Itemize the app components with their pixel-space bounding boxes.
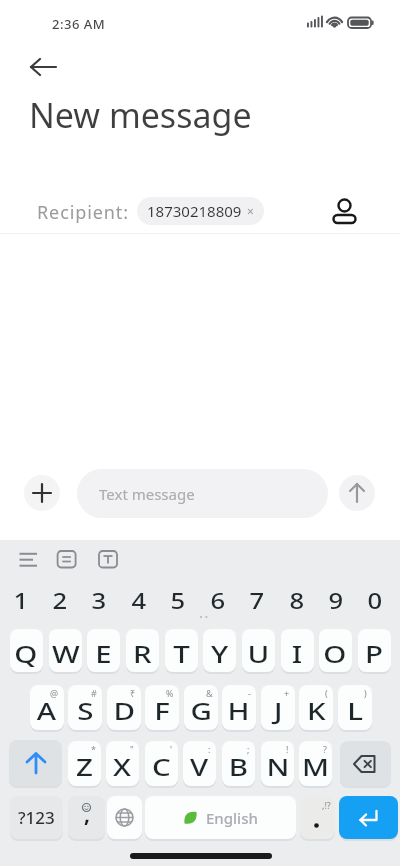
button[interactable]: English [145, 796, 296, 839]
staticText: D [114, 695, 135, 726]
button[interactable]: E [87, 629, 120, 672]
staticText: × [247, 203, 254, 219]
button[interactable]: K [299, 685, 333, 730]
button[interactable]: H [222, 685, 256, 730]
staticText: I [292, 638, 303, 669]
button[interactable]: , [68, 796, 105, 839]
button[interactable]: S [68, 685, 102, 730]
staticText: " [130, 743, 134, 755]
button[interactable]: P [358, 629, 391, 672]
staticText: A [37, 695, 57, 726]
button[interactable]: 18730218809 [137, 197, 264, 225]
staticText: Q [14, 638, 39, 669]
button[interactable]: G [184, 685, 218, 730]
button[interactable]: 7 [238, 579, 276, 623]
staticText: ( [325, 687, 328, 699]
staticText: L [347, 695, 364, 726]
staticText: 4 [132, 587, 147, 616]
staticText: New message [29, 92, 252, 138]
button[interactable] [95, 548, 120, 571]
staticText: % [166, 687, 174, 699]
button[interactable]: 3 [80, 579, 118, 623]
button[interactable]: ?123 [10, 796, 63, 839]
staticText: & [206, 687, 213, 699]
staticText: 2:36 AM [52, 15, 106, 33]
staticText: 2 [53, 587, 68, 616]
button[interactable]: Q [10, 629, 43, 672]
button[interactable]: M [299, 741, 332, 786]
staticText: H [227, 695, 250, 726]
button[interactable]: ,!? [300, 796, 335, 839]
button[interactable]: I [281, 629, 314, 672]
button[interactable] [22, 53, 62, 81]
staticText: 18730218809 [147, 201, 242, 221]
button[interactable]: Text message [77, 469, 328, 518]
button[interactable]: R [126, 629, 159, 672]
button[interactable]: 6 [199, 579, 237, 623]
staticText: E [95, 638, 112, 669]
button[interactable] [9, 740, 62, 786]
staticText: ,!? [322, 799, 331, 811]
staticText: : [208, 743, 211, 755]
button[interactable]: C [145, 741, 178, 786]
staticText: 8 [290, 587, 305, 616]
button[interactable]: 8 [278, 579, 316, 623]
staticText: P [365, 638, 384, 669]
button[interactable]: U [242, 629, 275, 672]
staticText: R [133, 638, 152, 669]
staticText: U [248, 638, 269, 669]
staticText: ' [170, 743, 173, 755]
staticText: F [154, 695, 171, 726]
button[interactable]: 4 [120, 579, 158, 623]
button[interactable] [339, 475, 375, 511]
staticText: 6 [211, 587, 226, 616]
staticText: X [113, 751, 132, 782]
staticText: 1 [14, 587, 29, 616]
button[interactable]: W [49, 629, 82, 672]
button[interactable] [24, 475, 60, 511]
button[interactable] [339, 796, 398, 839]
staticText: * [91, 743, 96, 755]
button[interactable]: 9 [317, 579, 355, 623]
staticText: S [77, 695, 94, 726]
staticText: K [307, 695, 326, 726]
staticText: English [206, 808, 258, 828]
button[interactable]: Z [68, 741, 101, 786]
button[interactable]: J [261, 685, 295, 730]
button[interactable]: B [222, 741, 255, 786]
button[interactable]: Y [203, 629, 236, 672]
button[interactable] [15, 549, 41, 570]
staticText: 0 [368, 587, 383, 616]
button[interactable]: 5 [159, 579, 197, 623]
staticText: ? [323, 743, 327, 755]
staticText: 7 [250, 587, 265, 616]
button[interactable]: A [30, 685, 64, 730]
button[interactable]: F [145, 685, 179, 730]
button[interactable]: X [106, 741, 139, 786]
staticText: - [248, 687, 251, 699]
button[interactable]: V [183, 741, 216, 786]
button[interactable] [54, 548, 79, 571]
staticText: ₹ [130, 687, 136, 699]
button[interactable]: 0 [356, 579, 394, 623]
button[interactable]: 2 [41, 579, 79, 623]
staticText: ) [364, 687, 367, 699]
button[interactable] [328, 194, 362, 228]
staticText: Recipient: [37, 200, 129, 225]
staticText: V [190, 751, 209, 782]
button[interactable]: L [338, 685, 372, 730]
button[interactable]: D [107, 685, 141, 730]
staticText: B [229, 751, 249, 782]
button[interactable]: 1 [2, 579, 40, 623]
staticText: M [302, 751, 330, 782]
staticText: N [266, 751, 289, 782]
button[interactable]: N [261, 741, 294, 786]
staticText: , [84, 800, 90, 829]
staticText: J [274, 695, 283, 726]
staticText: T [173, 638, 190, 669]
staticText: 5 [171, 587, 186, 616]
button[interactable] [340, 741, 391, 786]
button[interactable] [107, 796, 142, 839]
button[interactable]: O [319, 629, 352, 672]
button[interactable]: T [165, 629, 198, 672]
